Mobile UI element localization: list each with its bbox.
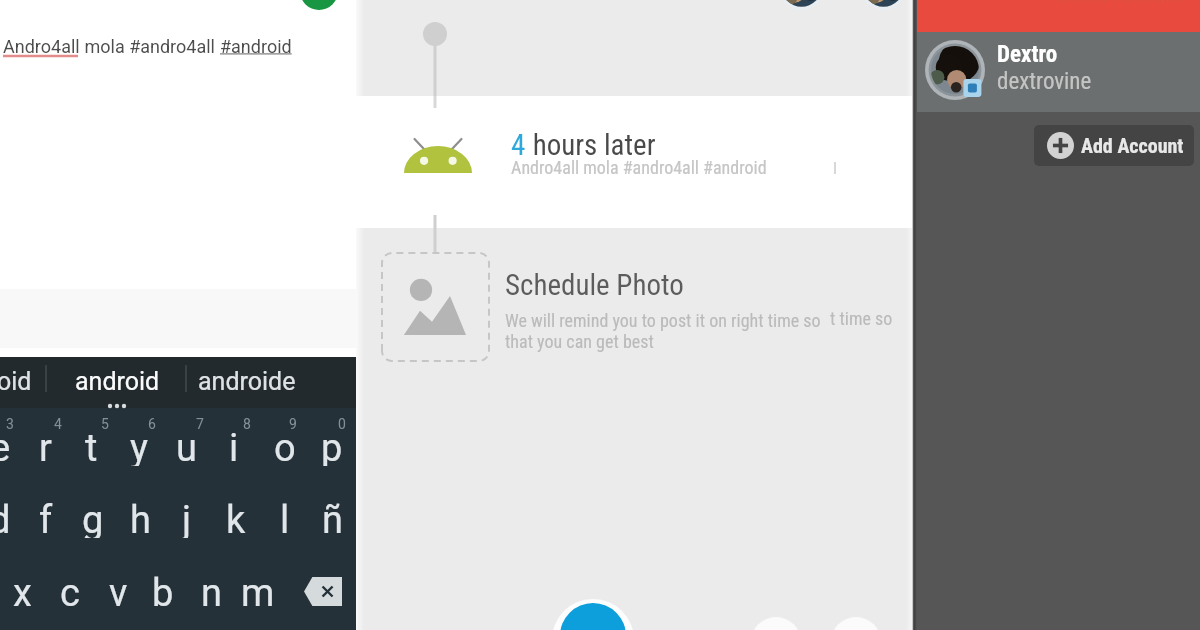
staticText: l (280, 498, 290, 538)
staticText: oid (0, 367, 32, 396)
button[interactable]: Create post (560, 603, 626, 630)
staticText: 6 (148, 416, 156, 432)
staticText: 4 (54, 416, 62, 432)
staticText: androide (198, 367, 296, 396)
staticText: r (39, 426, 52, 466)
staticText: f (39, 498, 53, 538)
staticText: dextrovine (997, 68, 1092, 95)
staticText: e (0, 426, 11, 466)
button[interactable]: Add Account (1034, 125, 1194, 166)
staticText: 5 (101, 416, 109, 432)
staticText: d (0, 498, 11, 538)
staticText: m (241, 571, 275, 611)
staticText: b (152, 571, 174, 611)
staticText: p (321, 426, 343, 466)
staticText: Add Account (1081, 134, 1184, 157)
staticText: 0 (338, 416, 346, 432)
staticText: g (82, 498, 104, 538)
staticText: o (274, 426, 296, 466)
button[interactable]: Dextro (916, 32, 1200, 112)
staticText: 7 (196, 416, 204, 432)
staticText: t (85, 426, 98, 466)
staticText: Dextro (997, 41, 1058, 68)
staticText: t time so (830, 308, 893, 329)
staticText: 9 (289, 416, 297, 432)
staticText: k (226, 498, 246, 538)
staticText: 4 (511, 128, 526, 162)
staticText: i (229, 426, 239, 466)
staticText: android (75, 367, 160, 396)
staticText: u (176, 426, 197, 466)
staticText: x (13, 571, 32, 611)
staticText: j (182, 498, 192, 538)
staticText: Andro4all mola #andro4all #android (511, 157, 767, 178)
staticText: c (60, 571, 80, 611)
staticText: y (130, 426, 148, 466)
button[interactable]: Backspace (304, 577, 342, 606)
staticText: We will remind you to post it on right t… (505, 310, 821, 353)
staticText: 8 (243, 416, 251, 432)
staticText: Schedule Photo (505, 268, 684, 302)
staticText: ñ (322, 498, 343, 538)
staticText: h (130, 498, 151, 538)
staticText: #android (220, 36, 292, 57)
staticText: 3 (6, 416, 14, 432)
staticText: mola #andro4all (80, 36, 220, 57)
staticText: n (201, 571, 222, 611)
staticText: v (109, 571, 128, 611)
staticText: Andro4all (3, 36, 80, 57)
staticText: hours later (526, 128, 656, 162)
